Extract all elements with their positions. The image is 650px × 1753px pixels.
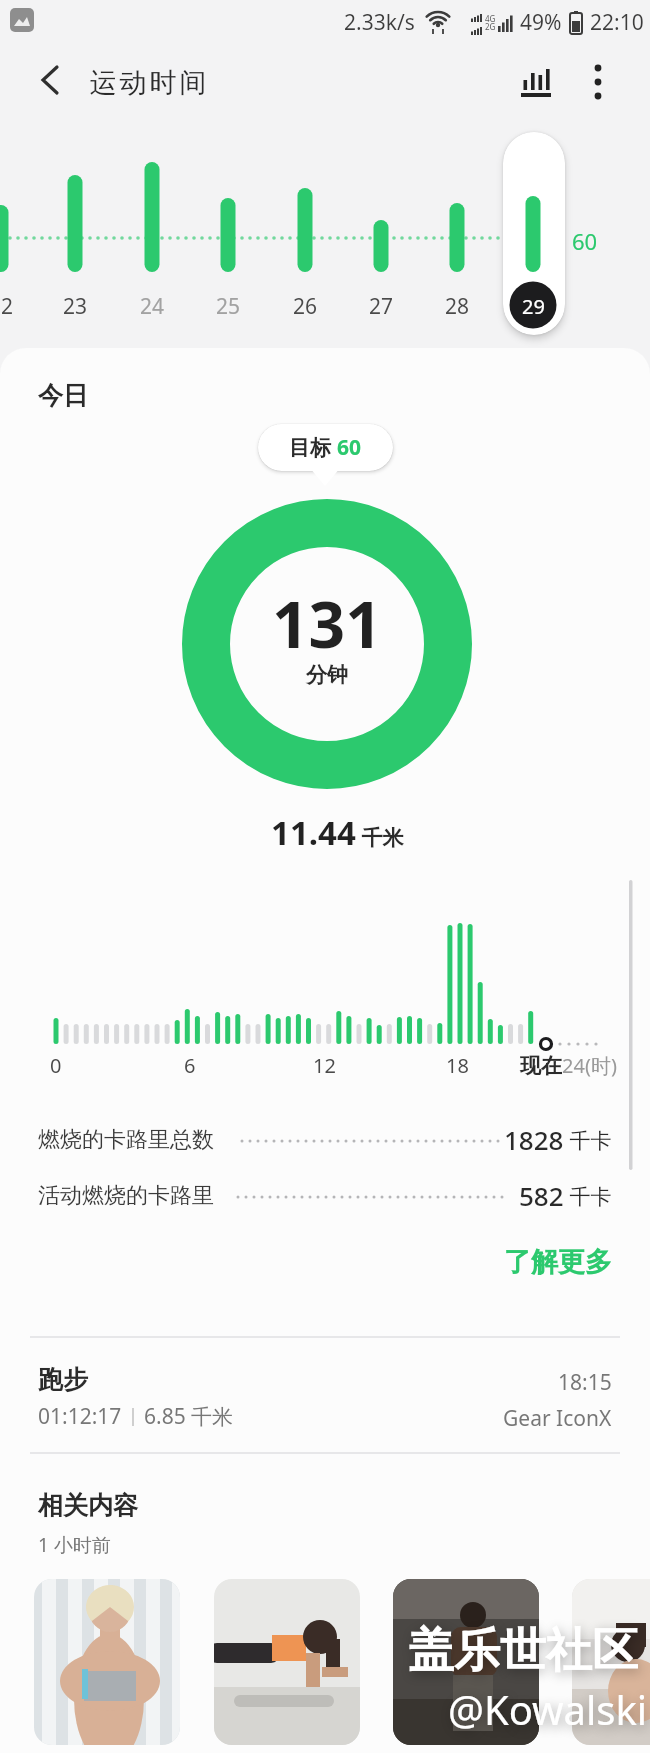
- button[interactable]: 跑步: [0, 1350, 650, 1450]
- staticText: 目标: [289, 433, 337, 462]
- staticText: 盖乐世社区: [408, 1622, 638, 1680]
- button[interactable]: [34, 1579, 180, 1745]
- staticText: 24: [140, 292, 165, 320]
- staticText: 23: [63, 292, 88, 320]
- staticText: 6: [184, 1052, 196, 1078]
- staticText: 131: [272, 580, 382, 660]
- staticText: 4G 2G: [485, 13, 496, 32]
- staticText: 0: [50, 1052, 62, 1078]
- staticText: 今日: [38, 380, 88, 411]
- button[interactable]: [28, 58, 72, 102]
- button[interactable]: 了解更多: [470, 1240, 630, 1284]
- staticText: 2.33k/s: [344, 8, 415, 37]
- staticText: 1 小时前: [38, 1532, 111, 1558]
- staticText: 11.44: [271, 810, 356, 855]
- staticText: 活动燃烧的卡路里: [38, 1182, 214, 1210]
- staticText: 1828: [504, 1122, 564, 1157]
- staticText: 千卡: [564, 1126, 612, 1155]
- button[interactable]: [503, 132, 565, 335]
- staticText: 了解更多: [504, 1245, 612, 1279]
- staticText: 分钟: [306, 662, 348, 688]
- staticText: 49%: [520, 8, 562, 37]
- button[interactable]: 活动燃烧的卡路里: [0, 1174, 650, 1218]
- staticText: 28: [445, 292, 470, 320]
- staticText: 01:12:17: [38, 1402, 122, 1431]
- staticText: 582: [519, 1178, 564, 1213]
- staticText: 25: [216, 292, 241, 320]
- staticText: 运动时间: [88, 66, 208, 100]
- staticText: 27: [369, 292, 394, 320]
- staticText: 24(时): [562, 1052, 617, 1079]
- staticText: 相关内容: [38, 1490, 138, 1521]
- staticText: 60: [337, 433, 362, 462]
- staticText: @Kowalski: [448, 1682, 648, 1736]
- staticText: 跑步: [38, 1364, 88, 1395]
- staticText: 18:15: [558, 1368, 612, 1397]
- button[interactable]: [508, 56, 564, 108]
- staticText: 22: [0, 292, 14, 320]
- button[interactable]: [572, 1579, 650, 1745]
- button[interactable]: [574, 56, 622, 108]
- staticText: 12: [313, 1052, 336, 1078]
- staticText: 22:10: [590, 8, 644, 37]
- staticText: 18: [446, 1052, 469, 1078]
- staticText: 60: [572, 226, 598, 256]
- button[interactable]: 燃烧的卡路里总数: [0, 1118, 650, 1162]
- staticText: Gear IconX: [503, 1404, 612, 1433]
- staticText: 29: [522, 293, 545, 320]
- staticText: 千卡: [564, 1182, 612, 1211]
- staticText: 26: [293, 292, 318, 320]
- button[interactable]: [393, 1579, 539, 1745]
- staticText: 现在: [520, 1053, 562, 1079]
- staticText: 燃烧的卡路里总数: [38, 1126, 214, 1154]
- button[interactable]: [214, 1579, 360, 1745]
- staticText: 千米: [356, 823, 404, 852]
- staticText: 6.85 千米: [144, 1402, 234, 1431]
